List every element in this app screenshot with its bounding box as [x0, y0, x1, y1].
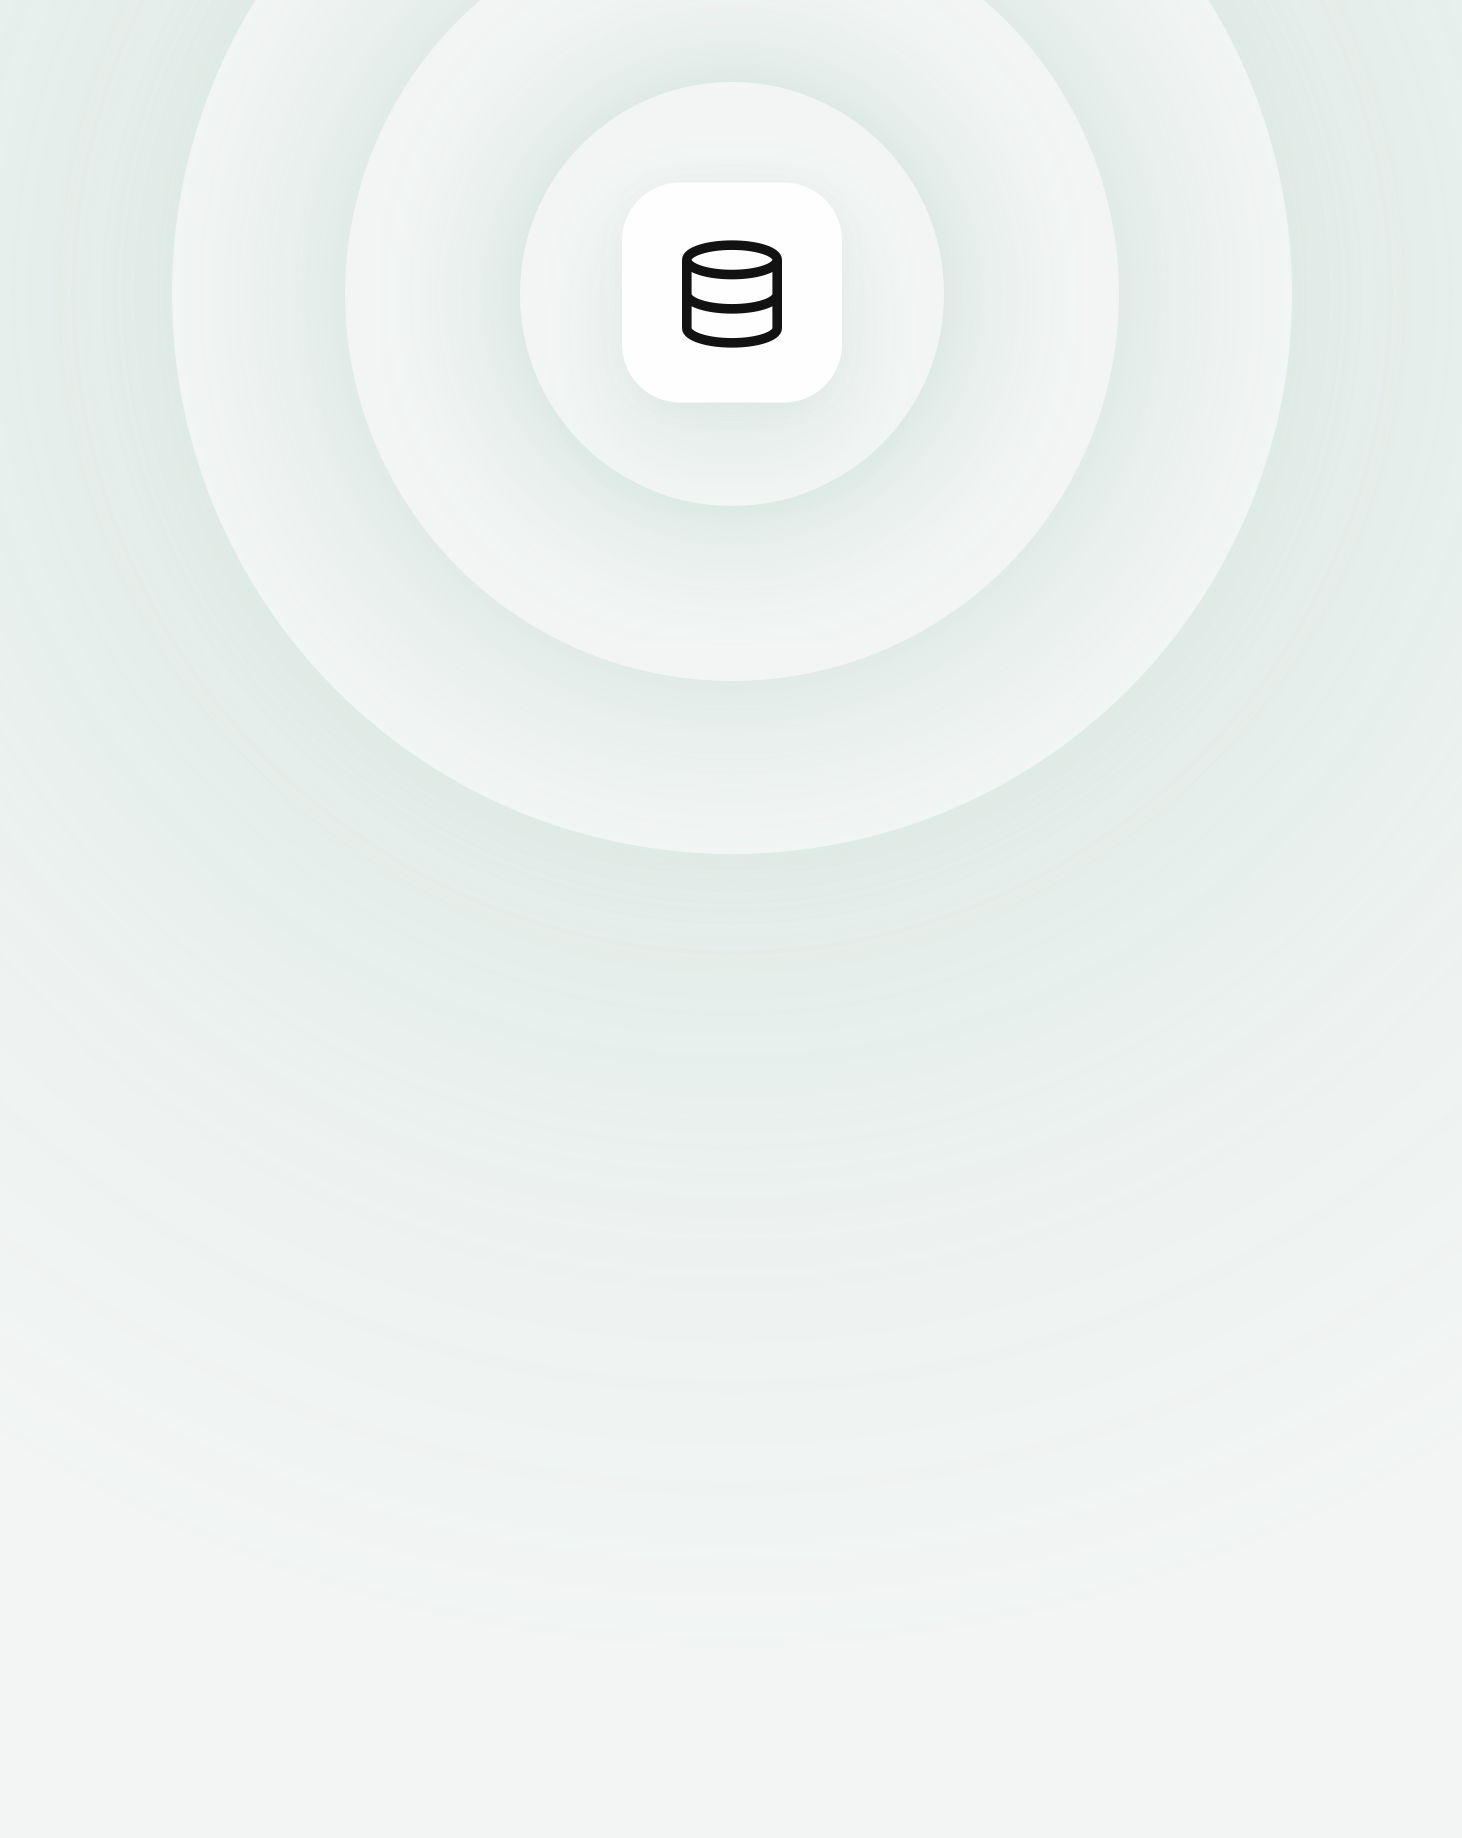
button[interactable]: Database [622, 184, 842, 404]
